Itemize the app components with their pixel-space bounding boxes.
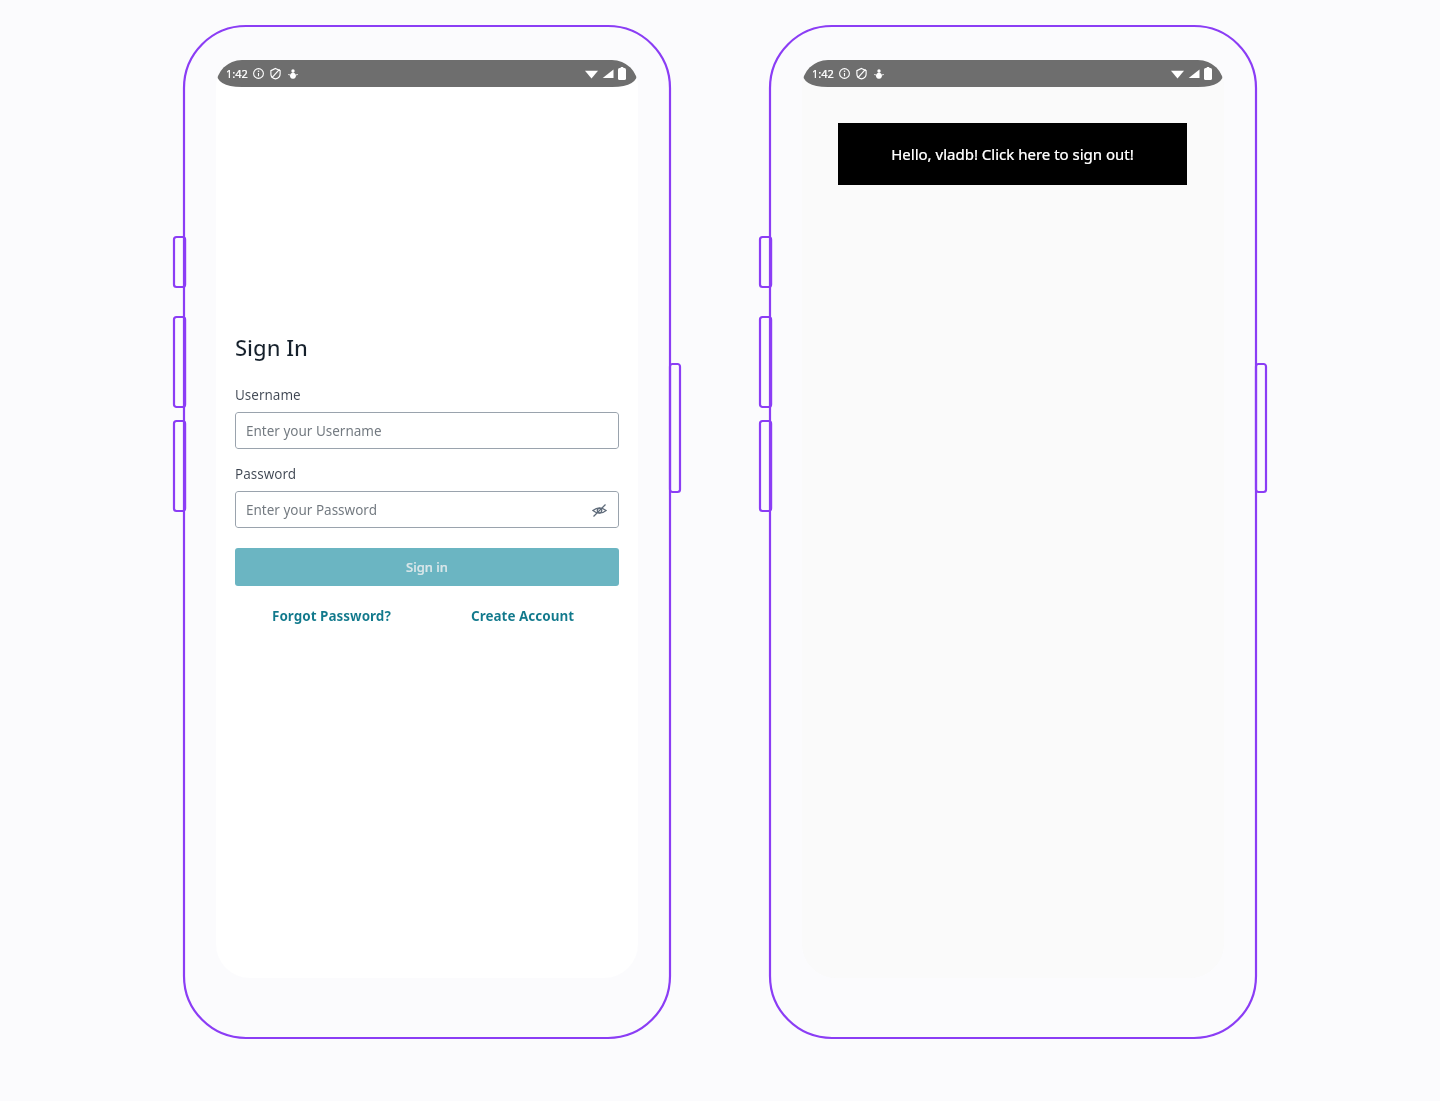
staticText: Create Account: [471, 607, 575, 625]
staticText: Sign In: [235, 332, 308, 362]
staticText: Username: [235, 386, 301, 404]
button[interactable]: Enter your Username: [235, 412, 619, 449]
button[interactable]: Create Account: [427, 607, 619, 625]
button[interactable]: Forgot Password?: [235, 607, 427, 625]
staticText: Sign in: [406, 558, 448, 576]
button[interactable]: Enter your Password: [235, 491, 619, 528]
staticText: Forgot Password?: [272, 607, 391, 625]
button[interactable]: Show password: [589, 500, 609, 520]
staticText: Hello, vladb! Click here to sign out!: [891, 144, 1134, 164]
staticText: 1:42: [226, 66, 248, 81]
staticText: Password: [235, 465, 297, 483]
staticText: Enter your Password: [246, 501, 377, 519]
staticText: Enter your Username: [246, 422, 382, 440]
button[interactable]: Hello, vladb! Click here to sign out!: [838, 123, 1187, 185]
button[interactable]: Sign in: [235, 548, 619, 586]
staticText: 1:42: [812, 66, 834, 81]
